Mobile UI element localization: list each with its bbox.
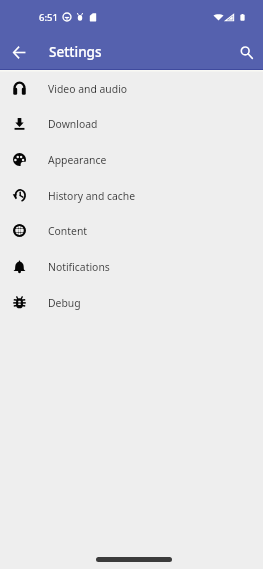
button[interactable]: History and cache: [0, 177, 263, 213]
button[interactable]: Search: [230, 32, 263, 72]
staticText: Debug: [48, 296, 81, 310]
staticText: Notifications: [48, 260, 110, 274]
button[interactable]: Download: [0, 105, 263, 141]
staticText: Content: [48, 224, 88, 238]
staticText: History and cache: [48, 189, 136, 203]
staticText: Settings: [49, 43, 102, 61]
button[interactable]: Appearance: [0, 141, 263, 177]
button[interactable]: Notifications: [0, 248, 263, 284]
staticText: Appearance: [48, 153, 107, 167]
staticText: Video and audio: [48, 82, 128, 96]
staticText: 6:51: [39, 11, 58, 24]
button[interactable]: Back: [0, 32, 38, 72]
staticText: Download: [48, 117, 98, 131]
button[interactable]: Debug: [0, 284, 263, 320]
button[interactable]: Content: [0, 212, 263, 248]
button[interactable]: Video and audio: [0, 70, 263, 106]
